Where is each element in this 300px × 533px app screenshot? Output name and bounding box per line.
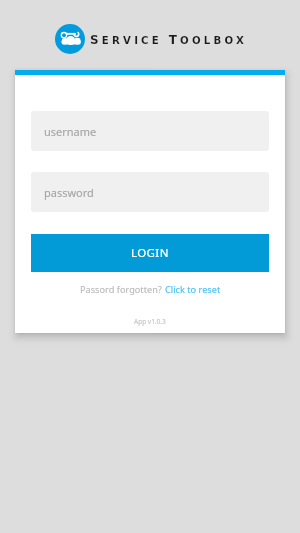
button[interactable]: username	[31, 111, 269, 151]
staticText: Passord forgotten?	[80, 283, 165, 296]
button[interactable]: LOGIN	[31, 234, 269, 272]
staticText: password	[44, 185, 94, 200]
staticText: LOGIN	[131, 245, 169, 261]
staticText: SERVICE TOOLBOX	[90, 33, 248, 47]
staticText: App v1.0.3	[134, 317, 166, 326]
staticText: Click to reset	[165, 283, 221, 296]
button[interactable]: password	[31, 172, 269, 212]
staticText: username	[44, 124, 97, 139]
other: Service Toolbox logo	[55, 24, 85, 54]
button[interactable]: Passord forgotten?	[80, 283, 221, 296]
